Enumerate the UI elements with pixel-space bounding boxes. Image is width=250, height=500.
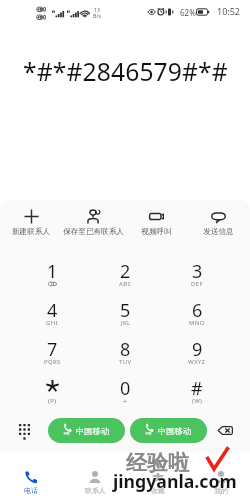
button[interactable]: (P) [22,376,82,410]
button[interactable]: 2 [95,259,155,293]
staticText: 电话 [24,486,38,495]
button[interactable]: 1 [22,259,82,293]
button[interactable]: Dialpad options [12,418,37,443]
staticText: 1 [47,259,58,279]
button[interactable]: 保存至已有联系人 [61,200,125,240]
button[interactable]: 中国移动 [130,418,207,443]
staticText: 发送信息 [203,227,234,237]
staticText: jingyanla.com [113,469,237,493]
button[interactable]: 电话 [7,470,55,500]
button[interactable]: Delete [212,418,238,443]
staticText: 5 [120,298,131,318]
button[interactable]: 新建联系人 [2,200,60,240]
staticText: 经验啦 [124,449,193,478]
staticText: 13 B/s [93,6,101,19]
staticText: 3 [192,259,203,279]
staticText: (P) [48,397,57,405]
button[interactable]: 5 [95,298,155,332]
button[interactable]: 中国移动 [48,418,125,443]
staticText: 2 [120,259,131,279]
button[interactable]: 0 [95,376,155,410]
staticText: 保存至已有联系人 [63,227,124,237]
staticText: # [191,376,203,396]
staticText: (W) [192,397,203,405]
staticText: 新建联系人 [12,227,50,237]
staticText: 联系人 [85,486,106,495]
staticText: + [123,397,128,407]
button[interactable]: 9 [167,337,227,371]
staticText: *#*#2846579#*# [23,55,228,85]
staticText: GHI [46,319,58,327]
staticText: jingyanla.com [111,468,243,494]
button[interactable]: 3 [167,259,227,293]
staticText: PQRS [44,358,61,366]
button[interactable]: 联系人 [71,470,119,500]
button[interactable]: 发送信息 [189,200,247,240]
staticText: 62% [180,7,196,18]
button[interactable]: 6 [167,298,227,332]
staticText: 收藏 [151,486,165,495]
staticText: 9 [192,337,203,357]
button[interactable]: 4 [22,298,82,332]
staticText: 我的 [214,486,228,495]
staticText: 0 [120,376,131,396]
staticText: JKL [121,319,131,327]
staticText: 视频呼叫 [141,227,172,237]
staticText: TUV [119,358,132,366]
staticText: 6 [192,298,203,318]
button[interactable]: 收藏 [134,470,182,500]
staticText: 中国移动 [76,426,110,436]
staticText: WXYZ [188,358,206,366]
button[interactable]: 8 [95,337,155,371]
button[interactable]: 我的 [197,470,245,500]
staticText: 4 [47,298,58,318]
staticText: ABC [119,280,132,288]
staticText: 中国移动 [158,426,192,436]
staticText: 7 [47,337,58,357]
staticText: MNO [189,319,205,327]
staticText: 8 [120,337,131,357]
button[interactable]: 视频呼叫 [127,200,185,240]
staticText: 经验啦 [126,450,189,476]
button[interactable]: # [167,376,227,410]
button[interactable]: 7 [22,337,82,371]
staticText: 10:52 [217,5,241,17]
staticText: DEF [191,280,203,288]
